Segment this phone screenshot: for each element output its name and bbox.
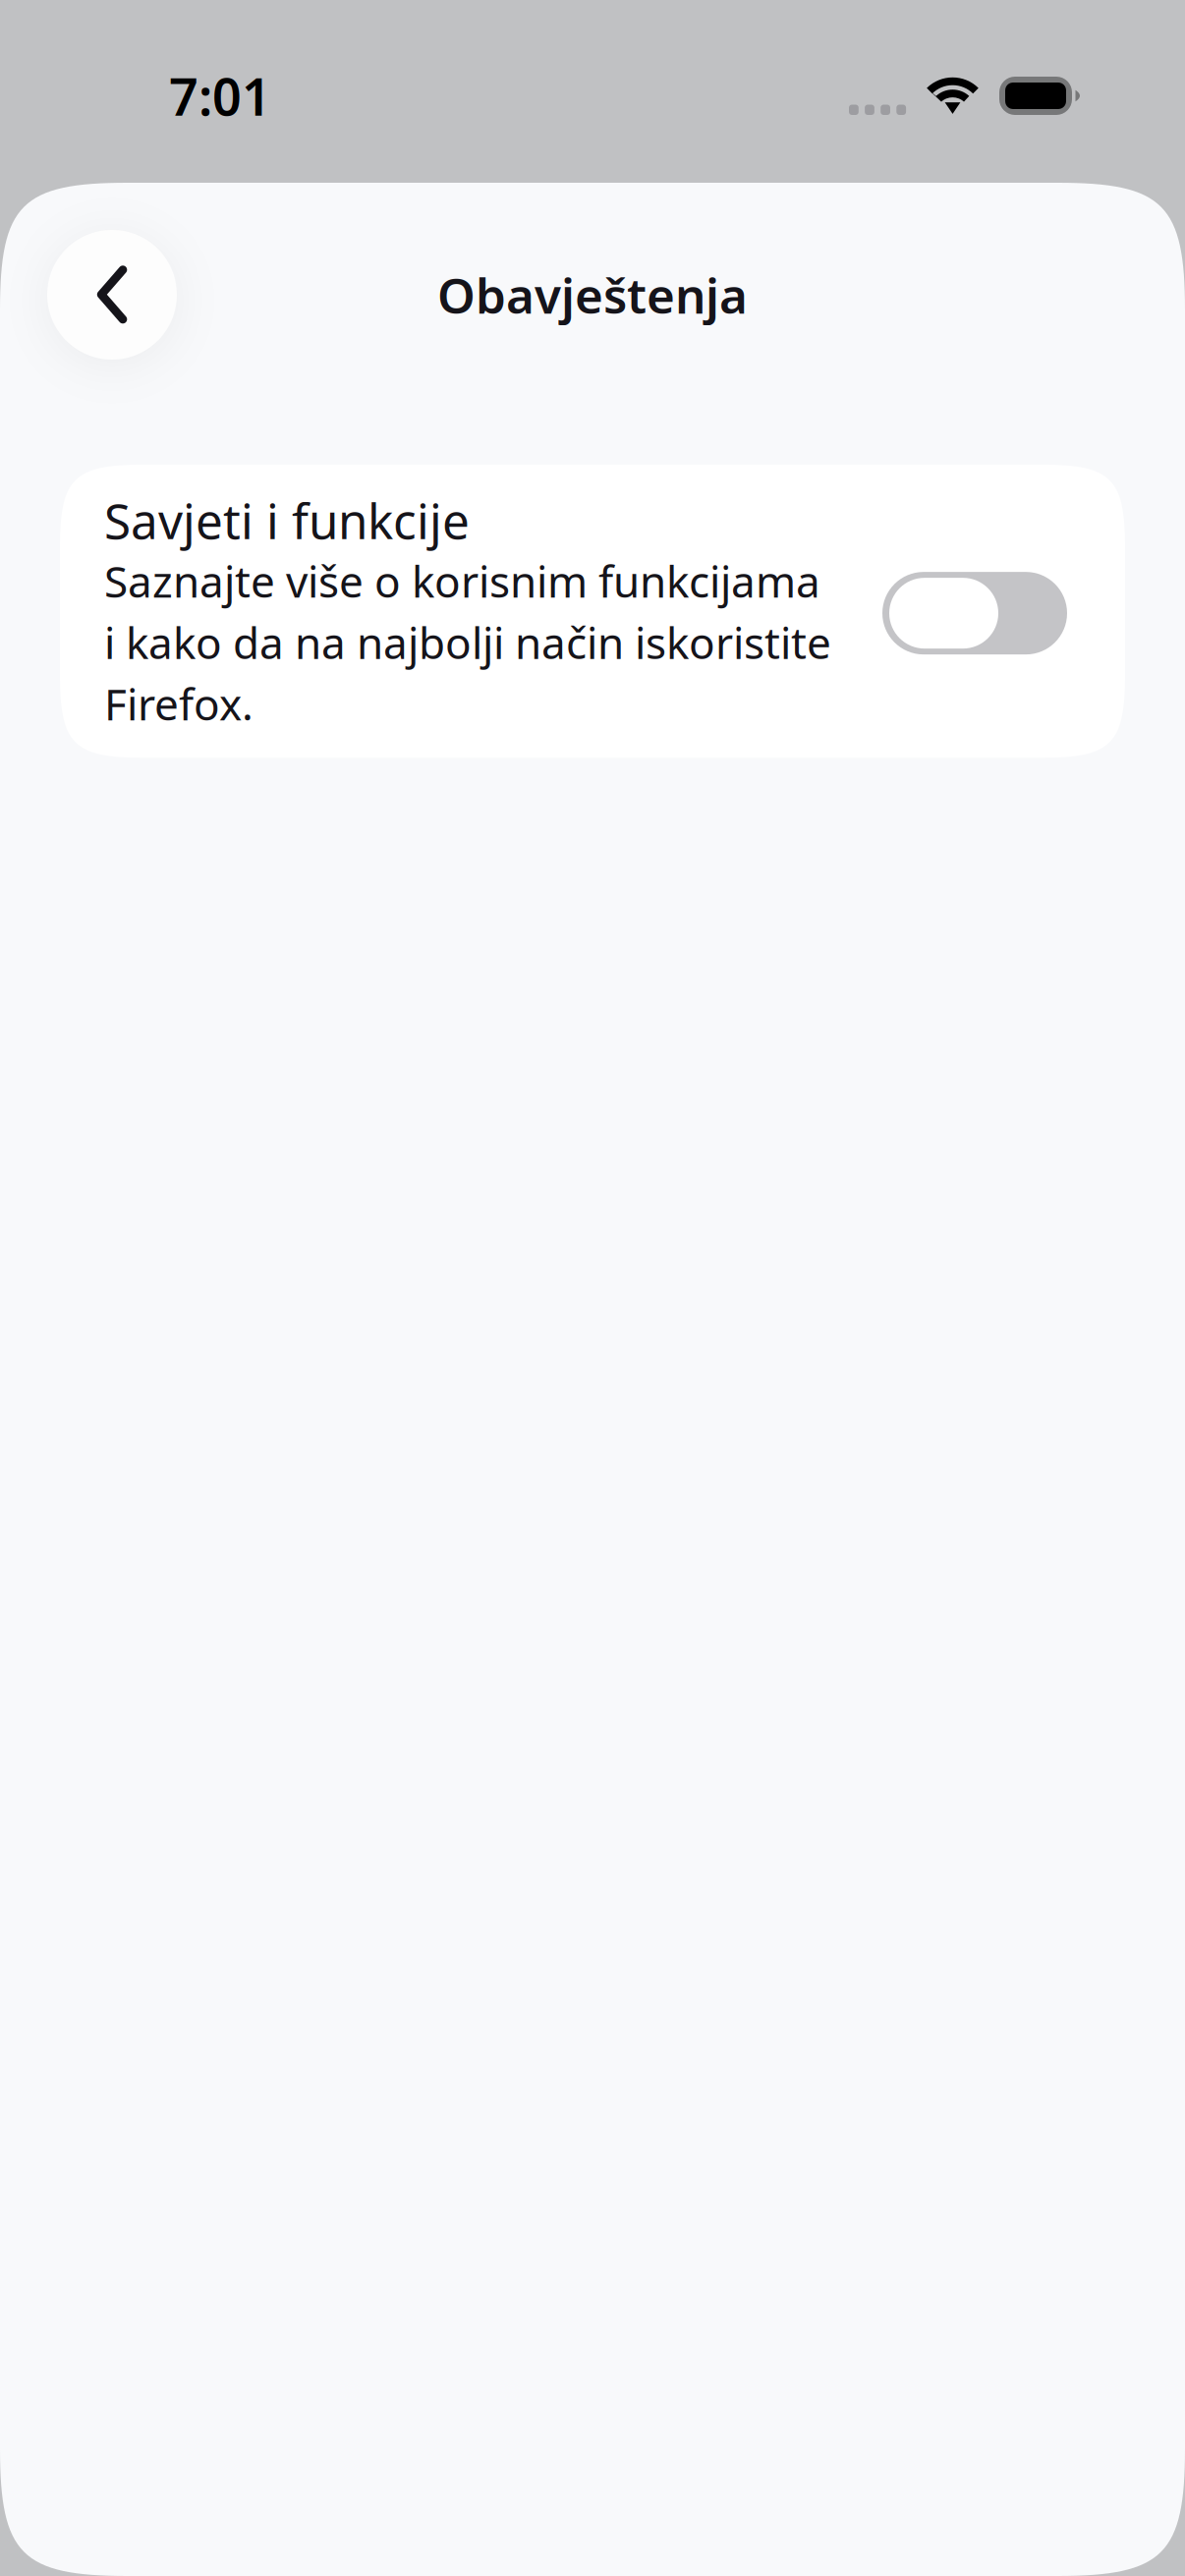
staticText: Obavještenja [437, 263, 748, 327]
staticText: 7:01 [169, 62, 271, 130]
button[interactable]: Back [47, 230, 177, 360]
staticText: Saznajte više o korisnim funkcijama i ka… [104, 552, 831, 732]
staticText: Savjeti i funkcije [104, 488, 470, 552]
button[interactable]: Savjeti i funkcije [60, 465, 1125, 758]
